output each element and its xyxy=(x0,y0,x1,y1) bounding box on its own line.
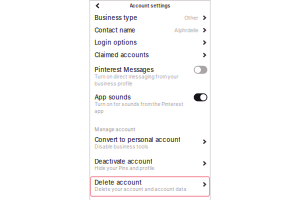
staticText: Delete account xyxy=(94,179,141,186)
staticText: Convert to personal account xyxy=(94,136,180,143)
button[interactable]: Back xyxy=(89,1,103,11)
button[interactable]: Claimed accounts xyxy=(89,49,211,61)
staticText: Turn on direct messaging from your xyxy=(94,74,178,80)
staticText: Contact name xyxy=(94,26,135,34)
button[interactable]: Manage account xyxy=(89,117,211,134)
staticText: Other xyxy=(184,14,198,21)
staticText: App sounds xyxy=(94,94,130,101)
button[interactable]: Pinterest Messages xyxy=(89,61,211,89)
staticText: Deactivate account xyxy=(94,158,152,165)
staticText: Account settings xyxy=(129,3,170,9)
button[interactable]: App sounds xyxy=(89,89,211,117)
button[interactable]: Delete account xyxy=(90,177,210,196)
button[interactable]: Convert to personal account xyxy=(89,134,211,154)
staticText: business profile xyxy=(94,81,132,87)
button[interactable]: Login options xyxy=(89,36,211,49)
staticText: app xyxy=(94,108,103,114)
staticText: Delete your account and account data xyxy=(94,186,186,192)
staticText: Claimed accounts xyxy=(94,51,148,59)
staticText: Pinterest Messages xyxy=(94,66,153,73)
staticText: Manage account xyxy=(94,126,135,132)
staticText: Login options xyxy=(94,39,136,46)
button[interactable]: Business type xyxy=(89,11,211,24)
staticText: Turn on for sounds from the Pinterest xyxy=(94,101,183,107)
staticText: Hide your Pins and profile xyxy=(94,165,154,171)
staticText: Disable business tools xyxy=(94,144,148,150)
button[interactable]: Contact name xyxy=(89,24,211,36)
staticText: Business type xyxy=(94,14,137,21)
staticText: Alphrdelle xyxy=(174,27,198,33)
button[interactable]: Deactivate account xyxy=(89,154,211,177)
